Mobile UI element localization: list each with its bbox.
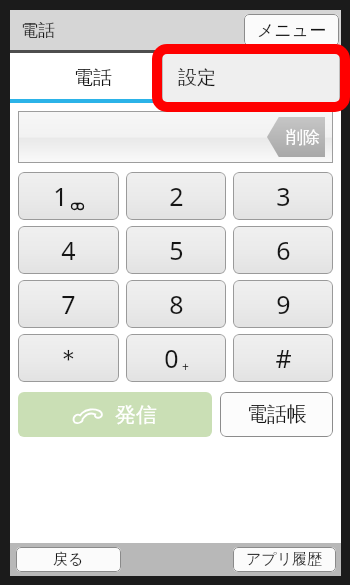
button[interactable]: 7 [18,280,119,328]
staticText: 設定 [178,66,216,90]
button[interactable]: 4 [18,226,119,274]
button[interactable]: 2 [126,172,226,220]
staticText: 電話帳 [247,402,307,427]
staticText: メニュー [257,20,327,41]
button[interactable]: 8 [126,280,226,328]
button[interactable]: 6 [233,226,333,274]
button[interactable]: 1 [18,172,119,220]
staticText: 2 [169,179,184,213]
staticText: # [275,341,292,375]
staticText: 5 [169,233,184,267]
button[interactable]: ＊ [18,334,119,382]
button[interactable]: Delete [18,111,333,163]
button[interactable]: 戻る [16,547,121,572]
staticText: アプリ履歴 [246,550,323,569]
staticText: 8 [169,287,184,321]
button[interactable]: アプリ履歴 [233,547,336,572]
staticText: 発信 [115,402,157,428]
button[interactable]: # [233,334,333,382]
staticText: 9 [276,287,291,321]
staticText: 1 [53,179,68,213]
button[interactable]: 3 [233,172,333,220]
staticText: 削除 [286,127,320,148]
other: Highlight [152,44,350,112]
button[interactable]: 発信 [18,392,212,437]
button[interactable]: 設定 [162,53,340,103]
staticText: 電話 [74,66,112,90]
staticText: 0 [164,341,179,375]
button[interactable]: 9 [233,280,333,328]
staticText: 7 [61,287,76,321]
button[interactable]: 電話 [10,53,175,103]
staticText: 電話 [21,20,55,41]
staticText: 4 [61,233,76,267]
button[interactable] [175,53,341,103]
button[interactable]: 電話帳 [220,392,333,437]
staticText: ＊ [56,343,81,374]
staticText: 戻る [53,550,84,569]
staticText: 3 [276,179,291,213]
button[interactable]: 5 [126,226,226,274]
button[interactable]: 0 [126,334,226,382]
button[interactable]: メニュー [244,14,339,46]
button[interactable]: Delete [267,117,329,157]
staticText: + [182,358,189,374]
staticText: 6 [276,233,291,267]
